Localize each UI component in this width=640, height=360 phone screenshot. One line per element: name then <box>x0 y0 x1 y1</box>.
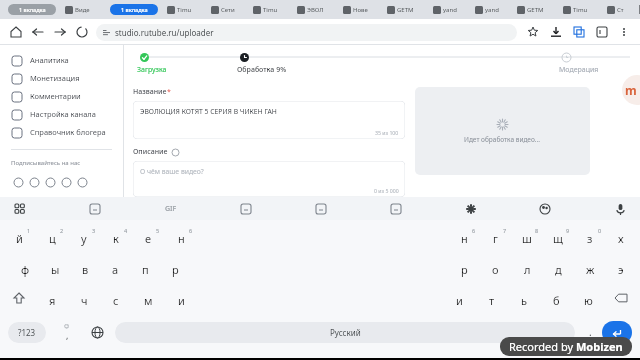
button[interactable]: Translate <box>386 199 406 219</box>
button[interactable]: Home <box>8 24 24 40</box>
button[interactable]: GETM <box>384 0 430 19</box>
button[interactable]: н <box>168 223 194 254</box>
button[interactable]: Виде <box>62 0 108 19</box>
staticText: ю <box>584 293 593 308</box>
button[interactable]: и <box>446 285 472 315</box>
button[interactable]: е <box>135 223 161 254</box>
button[interactable]: Настройка канала <box>0 105 123 123</box>
button[interactable]: к <box>103 223 129 254</box>
button[interactable]: ы <box>42 254 68 285</box>
button[interactable]: Back <box>30 24 46 40</box>
button[interactable]: й <box>6 223 32 254</box>
button[interactable]: л <box>514 254 540 285</box>
button[interactable]: м <box>135 285 161 315</box>
button[interactable]: г <box>482 223 508 254</box>
button[interactable]: 1 вкладка <box>6 0 62 19</box>
button[interactable]: ч <box>71 285 97 315</box>
button[interactable]: Settings <box>461 199 481 219</box>
staticText: б <box>553 293 560 308</box>
button[interactable]: ЭВОЛ <box>294 0 340 19</box>
button[interactable]: Аналитика <box>0 51 123 69</box>
button[interactable]: с <box>103 285 129 315</box>
button[interactable]: Comma <box>56 321 78 343</box>
button[interactable]: Help <box>622 75 640 105</box>
button[interactable]: в <box>72 254 98 285</box>
staticText: ф <box>21 262 30 277</box>
button[interactable]: Ст <box>604 0 638 19</box>
button[interactable]: р <box>451 254 477 285</box>
button[interactable]: т <box>479 285 505 315</box>
staticText: с <box>113 293 119 308</box>
staticText: yand <box>443 6 457 14</box>
button[interactable]: а <box>102 254 128 285</box>
staticText: Название <box>133 87 167 97</box>
button[interactable]: щ <box>545 223 571 254</box>
button[interactable]: р <box>162 254 188 285</box>
button[interactable]: Timu <box>250 0 294 19</box>
button[interactable]: ь <box>511 285 537 315</box>
button[interactable]: Комментарии <box>0 87 123 105</box>
staticText: Загрузка <box>137 65 167 75</box>
button[interactable]: Backspace <box>608 285 634 311</box>
button[interactable]: Download <box>548 24 564 40</box>
button[interactable]: More <box>74 174 90 190</box>
button[interactable]: Bookmark <box>525 24 541 40</box>
button[interactable]: More options <box>616 24 632 40</box>
button[interactable]: Themes <box>535 199 555 219</box>
button[interactable]: WhatsApp <box>58 174 74 190</box>
button[interactable]: з <box>577 223 603 254</box>
button[interactable]: studio.rutube.ru/uploader <box>96 24 517 41</box>
button[interactable]: и <box>168 285 194 315</box>
button[interactable]: у <box>71 223 97 254</box>
button[interactable]: б <box>543 285 569 315</box>
button[interactable]: Монетизация <box>0 69 123 87</box>
button[interactable]: ц <box>39 223 65 254</box>
button[interactable]: э <box>608 254 634 285</box>
staticText: т <box>489 293 495 308</box>
button[interactable]: ф <box>12 254 38 285</box>
button[interactable]: п <box>132 254 158 285</box>
button[interactable]: yand <box>472 0 514 19</box>
button[interactable]: Text editing <box>311 199 331 219</box>
button[interactable]: Stickers <box>85 199 105 219</box>
staticText: ЭВОЛ <box>307 6 324 14</box>
staticText: Recorded by <box>509 339 576 354</box>
button[interactable]: Clipboard <box>236 199 256 219</box>
button[interactable]: ш <box>514 223 540 254</box>
button[interactable]: Period <box>582 324 598 340</box>
button[interactable]: Timu <box>560 0 604 19</box>
button[interactable]: Enter <box>602 321 632 344</box>
button[interactable]: OK <box>26 174 42 190</box>
button[interactable]: 1 вкладка <box>108 0 164 19</box>
button[interactable]: О чём ваше видео? <box>133 161 405 197</box>
button[interactable]: Нове <box>340 0 384 19</box>
button[interactable]: VK <box>10 174 26 190</box>
button[interactable]: Русский <box>115 322 575 343</box>
staticText: н <box>461 231 468 246</box>
button[interactable]: Voice input <box>610 199 630 219</box>
button[interactable]: ж <box>577 254 603 285</box>
button[interactable]: Change language <box>86 321 108 343</box>
button[interactable]: х <box>608 223 634 254</box>
button[interactable]: Translate <box>571 24 587 40</box>
button[interactable]: GETM <box>514 0 560 19</box>
button[interactable]: Tabs <box>594 24 610 40</box>
button[interactable]: Telegram <box>42 174 58 190</box>
button[interactable]: ?123 <box>8 322 46 343</box>
button[interactable]: Справочник блогера <box>0 123 123 141</box>
button[interactable]: ю <box>575 285 601 315</box>
button[interactable]: yand <box>430 0 472 19</box>
button[interactable]: о <box>482 254 508 285</box>
button[interactable]: Timu <box>164 0 208 19</box>
button[interactable]: Reload <box>74 24 90 40</box>
button[interactable]: ЭВОЛЮЦИЯ КОТЯТ 5 СЕРИЯ В ЧИКЕН ГАН <box>133 101 405 139</box>
button[interactable]: Shift <box>6 285 32 311</box>
staticText: . <box>589 325 592 339</box>
button[interactable]: я <box>39 285 65 315</box>
button[interactable]: Forward <box>52 24 68 40</box>
button[interactable]: д <box>545 254 571 285</box>
button[interactable]: н <box>451 223 477 254</box>
button[interactable]: GIF <box>160 202 182 216</box>
button[interactable]: Сети <box>208 0 250 19</box>
button[interactable]: Clipboard grid <box>10 199 30 219</box>
